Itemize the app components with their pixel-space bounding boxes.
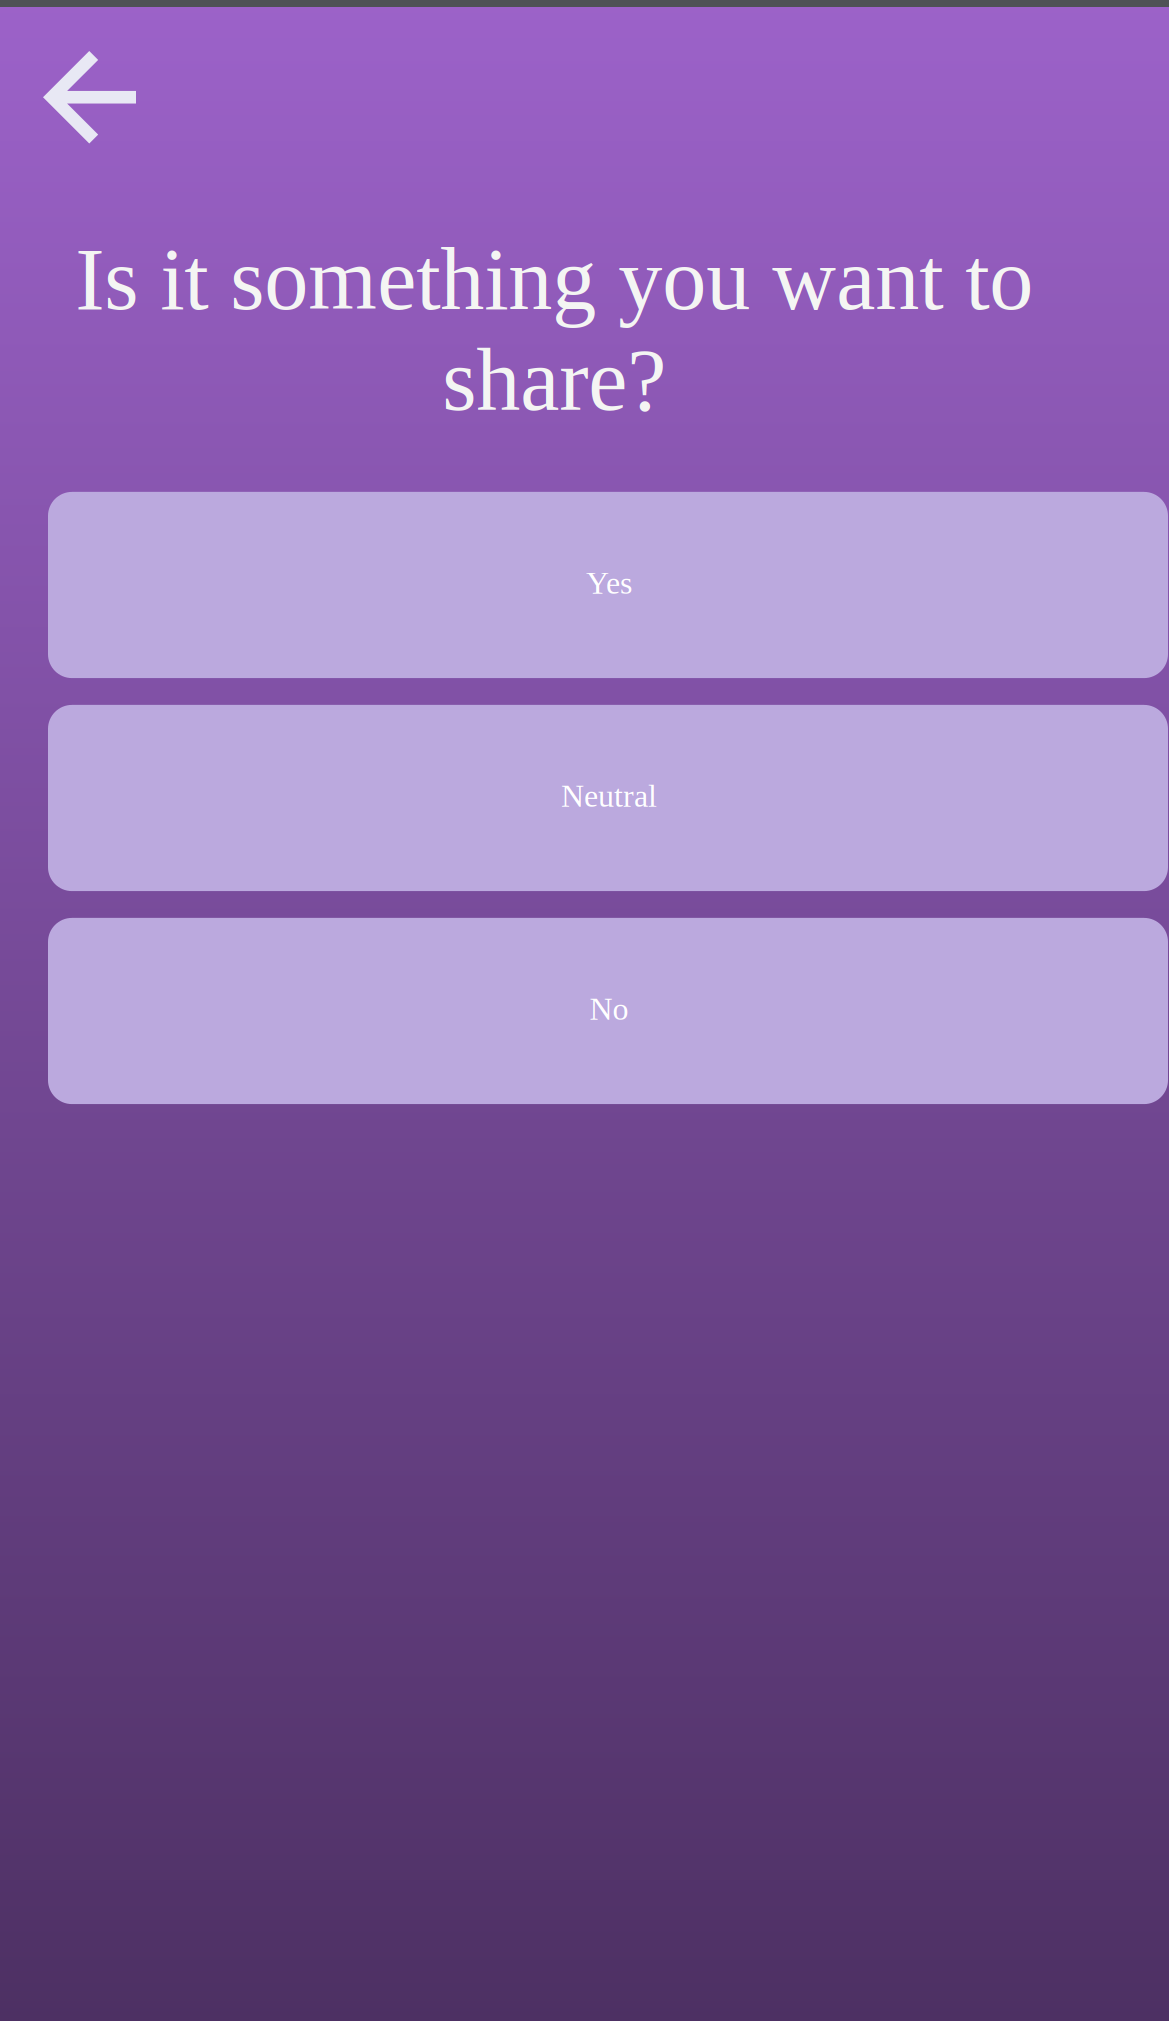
button[interactable]: No <box>48 918 1168 1104</box>
button[interactable]: Neutral <box>48 705 1168 891</box>
button[interactable]: Yes <box>48 492 1168 678</box>
staticText: Neutral <box>561 778 657 814</box>
button[interactable]: Back <box>0 0 160 163</box>
staticText: Yes <box>586 565 632 601</box>
staticText: Is it something you want to share? <box>75 230 1033 429</box>
staticText: No <box>589 991 628 1027</box>
